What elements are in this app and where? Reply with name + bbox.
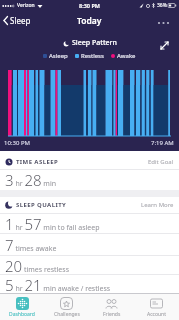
staticText: Dashboard [9, 311, 35, 318]
staticText: Awake [117, 52, 136, 60]
staticText: Today [77, 15, 102, 27]
staticText: 36% [157, 2, 167, 9]
staticText: Learn More [141, 201, 174, 209]
staticText: 5 hr 21 min awake / restless [5, 275, 111, 293]
staticText: 8:30 PM [79, 2, 100, 9]
staticText: 7 times awake [5, 235, 57, 255]
staticText: 10:30 PM [4, 139, 30, 147]
staticText: Restless [81, 52, 104, 60]
staticText: Asleep [49, 52, 68, 60]
staticText: Verizon [17, 2, 35, 9]
staticText: SLEEP QUALITY [16, 201, 67, 209]
staticText: Sleep Pattern [72, 38, 117, 48]
staticText: 3 hr 28 min [5, 170, 57, 190]
staticText: Challenges [54, 311, 80, 318]
staticText: Account [147, 311, 167, 318]
staticText: 20 times restless [5, 256, 69, 274]
staticText: Sleep [10, 15, 31, 26]
staticText: 1 hr 57 min to fall asleep [5, 214, 100, 233]
staticText: Friends [103, 311, 121, 318]
staticText: TIME ASLEEP [16, 158, 59, 166]
staticText: Edit Goal [148, 158, 174, 166]
staticText: 7:19 AM [151, 139, 174, 147]
